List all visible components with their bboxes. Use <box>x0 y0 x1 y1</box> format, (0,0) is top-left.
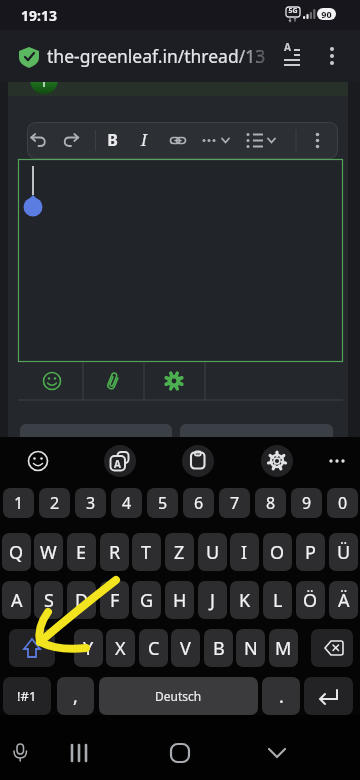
button[interactable]: Ö <box>296 581 325 619</box>
button[interactable]: F <box>100 581 129 619</box>
button[interactable]: 0 <box>327 488 358 518</box>
button[interactable]: 2 <box>39 488 70 518</box>
button[interactable]: C <box>139 629 168 667</box>
staticText: Y <box>83 636 94 661</box>
button[interactable] <box>311 629 353 667</box>
button[interactable] <box>83 362 144 400</box>
button[interactable]: J <box>198 581 227 619</box>
button[interactable]: 6 <box>183 488 214 518</box>
button[interactable]: R <box>100 533 129 571</box>
button[interactable]: 7 <box>219 488 250 518</box>
staticText: B <box>213 636 225 661</box>
button[interactable]: . <box>262 677 300 715</box>
staticText: 3 <box>86 492 96 514</box>
staticText: N <box>244 636 258 661</box>
staticText: 5 <box>158 492 168 514</box>
staticText: 5G <box>288 6 298 16</box>
button[interactable]: B <box>204 629 233 667</box>
staticText: B <box>107 129 118 151</box>
staticText: T <box>141 540 152 565</box>
button[interactable]: 4 <box>111 488 142 518</box>
staticText: U <box>206 540 220 565</box>
button[interactable] <box>176 439 220 483</box>
staticText: M <box>275 636 292 661</box>
button[interactable]: , <box>57 677 94 715</box>
button[interactable]: Ä <box>329 581 358 619</box>
button[interactable] <box>9 629 55 667</box>
staticText: Deutsch <box>155 688 202 704</box>
staticText: 8 <box>266 492 276 514</box>
button[interactable]: K <box>230 581 259 619</box>
button[interactable]: U <box>198 533 227 571</box>
button[interactable]: Ü <box>329 533 358 571</box>
staticText: W <box>40 540 57 565</box>
button[interactable]: P <box>296 533 325 571</box>
button[interactable]: M <box>269 629 298 667</box>
button[interactable] <box>61 735 97 771</box>
button[interactable]: 3 <box>75 488 106 518</box>
staticText: . <box>279 684 284 709</box>
button[interactable]: 1 <box>3 488 34 518</box>
button[interactable]: I <box>230 533 259 571</box>
button[interactable]: 8 <box>255 488 286 518</box>
button[interactable]: Y <box>74 629 103 667</box>
button[interactable]: L <box>263 581 292 619</box>
button[interactable] <box>315 439 359 483</box>
staticText: O <box>270 540 285 565</box>
staticText: 6 <box>194 492 204 514</box>
button[interactable]: S <box>34 581 63 619</box>
staticText: I <box>241 540 248 565</box>
button[interactable]: E <box>67 533 96 571</box>
staticText: R <box>109 540 121 565</box>
staticText: 19:13 <box>21 6 57 25</box>
staticText: D <box>75 588 89 613</box>
button[interactable]: G <box>132 581 161 619</box>
staticText: A <box>284 40 291 52</box>
button[interactable]: D <box>67 581 96 619</box>
button[interactable]: A <box>0 30 360 82</box>
button[interactable]: H <box>165 581 194 619</box>
button[interactable] <box>255 439 299 483</box>
button[interactable]: A <box>2 581 31 619</box>
staticText: 9 <box>302 492 312 514</box>
button[interactable] <box>93 122 298 159</box>
button[interactable]: Deutsch <box>99 677 258 715</box>
button[interactable]: 9 <box>291 488 322 518</box>
staticText: 90 <box>321 8 332 20</box>
staticText: the-greenleaf.in/thread/13 <box>47 44 266 68</box>
staticText: C <box>148 636 160 661</box>
button[interactable]: W <box>34 533 63 571</box>
button[interactable]: O <box>263 533 292 571</box>
staticText: K <box>239 588 251 613</box>
button[interactable] <box>298 122 338 159</box>
button[interactable] <box>144 362 205 400</box>
staticText: !#1 <box>17 687 37 705</box>
staticText: Ä <box>338 588 350 613</box>
staticText: V <box>180 636 191 661</box>
button[interactable] <box>2 735 38 771</box>
button[interactable]: T <box>132 533 161 571</box>
staticText: H <box>173 588 187 613</box>
button[interactable] <box>18 159 343 362</box>
button[interactable] <box>27 122 93 159</box>
button[interactable]: 5 <box>147 488 178 518</box>
button[interactable]: V <box>171 629 200 667</box>
staticText: Q <box>9 540 24 565</box>
button[interactable] <box>259 735 295 771</box>
staticText: Z <box>174 540 185 565</box>
staticText: E <box>76 540 87 565</box>
button[interactable]: !#1 <box>3 677 51 715</box>
button[interactable] <box>16 439 60 483</box>
button[interactable]: N <box>236 629 265 667</box>
staticText: J <box>210 588 215 613</box>
button[interactable]: Z <box>165 533 194 571</box>
button[interactable] <box>98 439 142 483</box>
button[interactable] <box>304 677 353 715</box>
button[interactable]: Q <box>2 533 31 571</box>
button[interactable]: X <box>106 629 135 667</box>
button[interactable] <box>162 735 198 771</box>
button[interactable] <box>18 362 83 400</box>
staticText: S <box>44 588 54 613</box>
